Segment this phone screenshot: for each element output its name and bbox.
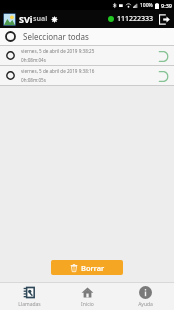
button[interactable]: Reproducir — [156, 49, 170, 63]
staticText: Inicio — [81, 301, 94, 308]
button[interactable]: SVisual logo — [3, 13, 16, 26]
button[interactable]: viernes, 5 de abril de 2019 9:38:16 — [0, 66, 174, 85]
staticText: sual — [33, 14, 48, 24]
staticText: SVi — [19, 13, 33, 25]
staticText: viernes, 5 de abril de 2019 9:38:25 — [21, 48, 95, 54]
staticText: Ayuda — [138, 301, 153, 308]
button[interactable]: viernes, 5 de abril de 2019 9:38:25 — [0, 46, 174, 65]
staticText: 0h:08m:05s — [21, 77, 46, 83]
button[interactable]: Borrar — [51, 260, 123, 275]
staticText: Seleccionar todas — [23, 31, 89, 42]
staticText: 9:39 — [161, 2, 172, 9]
button[interactable]: Seleccionar todas — [0, 28, 174, 45]
button[interactable]: Ayuda — [116, 283, 174, 310]
staticText: Borrar — [81, 263, 105, 273]
button[interactable]: Inicio — [58, 283, 116, 310]
staticText: 0h:08m:04s — [21, 57, 46, 63]
staticText: 100% — [140, 2, 153, 9]
button[interactable]: Reproducir — [156, 69, 170, 83]
staticText: Llamadas — [18, 301, 41, 308]
staticText: 111222333 — [117, 14, 154, 24]
staticText: viernes, 5 de abril de 2019 9:38:16 — [21, 68, 95, 74]
button[interactable]: Llamadas — [0, 283, 58, 310]
button[interactable]: Salir — [157, 12, 171, 26]
